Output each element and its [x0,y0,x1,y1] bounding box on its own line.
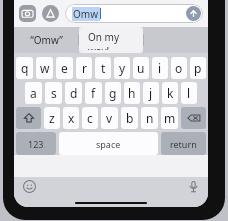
staticText: w [40,60,50,76]
button[interactable]: Shift [16,107,41,129]
staticText: return [170,138,197,150]
button[interactable]: Camera [19,5,36,22]
staticText: l [187,85,191,101]
button[interactable]: r [76,57,92,79]
button[interactable]: return [161,132,206,155]
staticText: x [68,110,75,126]
button[interactable]: u [133,57,149,79]
staticText: Omw [73,7,99,21]
staticText: h [128,85,136,101]
staticText: k [167,85,174,101]
staticText: u [137,60,145,76]
button[interactable]: “Omw” [14,27,78,53]
staticText: r [82,60,87,76]
staticText: 123 [28,138,44,150]
button[interactable]: 123 [16,132,56,155]
staticText: space [96,138,121,150]
button[interactable]: s [45,82,62,104]
button[interactable]: space [59,132,158,155]
button[interactable]: v [101,107,118,129]
button[interactable]: d [65,82,82,104]
button[interactable]: Send [186,6,201,21]
button[interactable]: On my way! [88,30,134,50]
staticText: y [119,60,126,76]
staticText: g [109,85,117,101]
button[interactable]: e [56,57,73,79]
button[interactable]: Delete [181,107,206,129]
staticText: c [87,110,93,126]
button[interactable]: g [105,82,121,104]
button[interactable]: l [181,82,197,104]
staticText: s [51,85,57,101]
button[interactable]: t [95,57,111,79]
staticText: e [61,60,68,76]
button[interactable]: q [16,57,33,79]
staticText: n [146,110,154,126]
staticText: i [158,60,162,76]
staticText: “Omw” [30,33,63,47]
button[interactable]: k [162,82,178,104]
staticText: p [194,60,202,76]
staticText: t [101,60,106,76]
button[interactable]: y [114,57,130,79]
button[interactable]: o [171,57,187,79]
button[interactable]: a [25,82,42,104]
button[interactable]: i [152,57,168,79]
button[interactable]: Emoji [22,179,36,193]
button[interactable]: f [85,82,102,104]
button[interactable]: m [161,107,178,129]
button[interactable]: Dictation [186,179,200,193]
staticText: v [106,110,113,126]
button[interactable]: c [82,107,98,129]
staticText: j [149,85,153,101]
button[interactable]: Omw [72,4,201,23]
button[interactable]: n [141,107,158,129]
button[interactable]: h [124,82,140,104]
staticText: d [70,85,78,101]
staticText: On my way! [88,30,134,50]
button[interactable]: z [44,107,60,129]
button[interactable]: w [36,57,53,79]
staticText: b [126,110,134,126]
button[interactable]: b [121,107,138,129]
button[interactable]: App Store [42,5,59,22]
staticText: z [49,110,55,126]
button[interactable]: p [190,57,206,79]
staticText: o [175,60,183,76]
button[interactable]: j [143,82,159,104]
staticText: a [30,85,37,101]
staticText: q [21,60,29,76]
staticText: f [91,85,96,101]
staticText: m [164,110,176,126]
button[interactable]: x [63,107,79,129]
